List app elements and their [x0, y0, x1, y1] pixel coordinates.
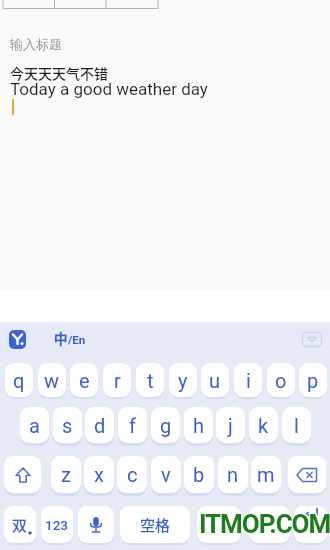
staticText: q [13, 369, 25, 392]
staticText: y [178, 369, 188, 392]
staticText: z [61, 463, 71, 486]
button[interactable]: b [184, 456, 214, 493]
button[interactable]: n [218, 456, 248, 493]
staticText: 今天天天气不错 [10, 63, 108, 83]
button[interactable]: r [103, 363, 131, 397]
button[interactable]: l [282, 407, 311, 443]
staticText: ITMOP.COM [200, 508, 330, 538]
button[interactable]: g [151, 407, 180, 443]
button[interactable]: d [85, 407, 114, 443]
staticText: s [62, 414, 73, 437]
staticText: 双 [12, 514, 28, 536]
staticText: e [79, 369, 90, 392]
button[interactable]: f [118, 407, 147, 443]
button[interactable] [302, 332, 322, 347]
button[interactable]: k [249, 407, 278, 443]
staticText: ITMOP.COM [198, 508, 330, 538]
button[interactable]: v [151, 456, 181, 493]
staticText: ITMOP.COM [199, 510, 330, 540]
button[interactable] [4, 456, 41, 493]
button[interactable]: c [117, 456, 147, 493]
staticText: 输入标题 [10, 36, 62, 52]
button[interactable]: y [169, 363, 197, 397]
staticText: j [228, 414, 233, 437]
button[interactable]: q [5, 363, 33, 397]
staticText: t [147, 369, 154, 392]
staticText: x [94, 463, 104, 486]
staticText: ITMOP.COM [200, 509, 330, 539]
staticText: 中 [54, 328, 68, 348]
staticText: p [307, 369, 319, 392]
button[interactable]: s [53, 407, 82, 443]
staticText: 123 [45, 517, 69, 533]
button[interactable]: a [20, 407, 49, 443]
button[interactable] [78, 506, 114, 543]
staticText: d [94, 414, 106, 437]
button[interactable]: 双 [4, 506, 36, 543]
staticText: v [161, 463, 171, 486]
button[interactable]: i [234, 363, 262, 397]
button[interactable]: u [201, 363, 229, 397]
staticText: w [44, 369, 60, 392]
button[interactable]: p [299, 363, 327, 397]
staticText: r [114, 369, 121, 392]
button[interactable]: m [251, 456, 281, 493]
staticText: m [257, 463, 275, 486]
button[interactable]: 123 [41, 506, 73, 543]
button[interactable]: t [136, 363, 164, 397]
staticText: i [246, 369, 251, 392]
button[interactable]: w [38, 363, 66, 397]
staticText: ITMOP.COM [199, 509, 330, 539]
button[interactable]: 中 [54, 328, 86, 348]
button[interactable] [294, 506, 327, 543]
button[interactable]: j [216, 407, 245, 443]
staticText: k [258, 414, 269, 437]
button[interactable] [9, 330, 26, 349]
button[interactable]: h [184, 407, 213, 443]
button[interactable]: 。 [197, 506, 241, 543]
staticText: l [294, 414, 299, 437]
staticText: ITMOP.COM [198, 509, 330, 539]
button[interactable]: 空格 [120, 506, 190, 543]
button[interactable]: x [84, 456, 114, 493]
button[interactable] [249, 506, 290, 543]
staticText: /En [68, 333, 86, 346]
staticText: Today a good weather day [10, 79, 208, 99]
staticText: 。 [211, 514, 227, 536]
staticText: a [29, 414, 40, 437]
staticText: n [227, 463, 239, 486]
staticText: 空格 [140, 514, 171, 536]
staticText: ITMOP.COM [198, 510, 330, 540]
button[interactable] [288, 456, 326, 493]
staticText: g [160, 414, 172, 437]
staticText: b [193, 463, 205, 486]
button[interactable]: z [51, 456, 81, 493]
staticText: u [209, 369, 221, 392]
staticText: ITMOP.COM [200, 510, 330, 540]
button[interactable]: e [70, 363, 98, 397]
staticText: c [127, 463, 138, 486]
button[interactable]: o [267, 363, 295, 397]
staticText: f [129, 414, 136, 437]
staticText: h [193, 414, 205, 437]
staticText: ITMOP.COM [199, 508, 330, 538]
staticText: o [275, 369, 287, 392]
